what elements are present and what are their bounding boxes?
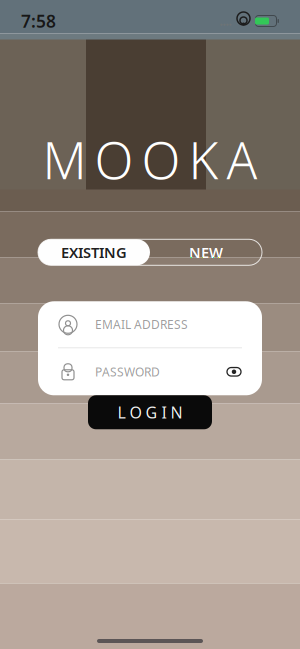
staticText: O xyxy=(94,126,133,193)
staticText: NEW xyxy=(189,242,223,262)
staticText: M xyxy=(42,126,86,193)
staticText: EXISTING xyxy=(61,242,127,262)
button[interactable]: PASSWORD xyxy=(38,348,262,395)
button[interactable]: EXISTING xyxy=(38,239,150,265)
button[interactable]: NEW xyxy=(150,239,262,265)
staticText: O xyxy=(141,126,180,193)
staticText: K xyxy=(188,126,218,193)
staticText: L O G I N xyxy=(117,402,182,423)
staticText: A xyxy=(226,126,257,193)
button[interactable]: L O G I N xyxy=(88,395,212,429)
staticText: 7:58 xyxy=(21,9,56,32)
staticText: PASSWORD xyxy=(95,364,160,380)
button[interactable]: EMAIL ADDRESS xyxy=(38,301,262,347)
staticText: EMAIL ADDRESS xyxy=(95,316,188,332)
